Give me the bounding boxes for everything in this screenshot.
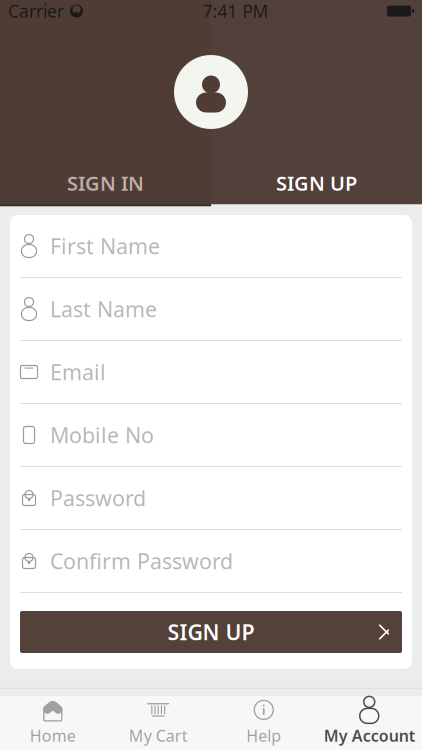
staticText: Email	[50, 358, 106, 386]
button[interactable]: My Cart	[105, 695, 211, 750]
button[interactable]: Help	[211, 695, 316, 750]
button[interactable]: Last Name	[10, 278, 412, 341]
button[interactable]: SIGN UP	[211, 162, 422, 206]
staticText: Home	[30, 725, 76, 746]
button[interactable]: Mobile No	[10, 404, 412, 467]
staticText: My Account	[324, 725, 415, 746]
staticText: Help	[246, 725, 281, 746]
staticText: 7:41 PM	[202, 0, 268, 22]
staticText: SIGN IN	[67, 170, 144, 196]
staticText: SIGN UP	[167, 618, 254, 646]
staticText: Confirm Password	[50, 547, 233, 575]
staticText: Mobile No	[50, 421, 154, 449]
button[interactable]: Home	[0, 695, 105, 750]
button[interactable]: My Account	[316, 695, 422, 750]
staticText: Last Name	[50, 295, 157, 323]
staticText: Password	[50, 484, 146, 512]
staticText: Carrier	[8, 0, 64, 22]
staticText: My Cart	[129, 725, 188, 746]
button[interactable]: SIGN UP	[20, 611, 402, 653]
button[interactable]: Email	[10, 341, 412, 404]
button[interactable]: SIGN IN	[0, 162, 211, 206]
staticText: First Name	[50, 232, 160, 260]
button[interactable]: Password	[10, 467, 412, 530]
button[interactable]: Confirm Password	[10, 530, 412, 593]
staticText: SIGN UP	[276, 170, 357, 196]
button[interactable]: First Name	[10, 215, 412, 278]
